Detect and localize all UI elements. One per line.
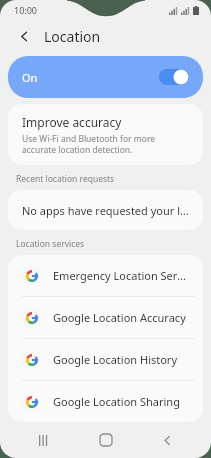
button[interactable]: Home: [88, 422, 124, 458]
staticText: Recent location requests: [16, 173, 115, 185]
button[interactable]: Emergency Location Service: [8, 255, 203, 296]
button[interactable]: Improve accuracy: [8, 104, 203, 165]
staticText: Emergency Location Service: [53, 268, 191, 283]
staticText: Improve accuracy: [22, 114, 122, 130]
button[interactable]: Back: [12, 24, 36, 48]
button[interactable]: Back: [149, 422, 185, 458]
button[interactable]: No apps have requested your locatio..: [8, 190, 203, 230]
staticText: Google Location Sharing: [53, 394, 180, 409]
staticText: Google Location Accuracy: [53, 310, 186, 325]
button[interactable]: Google Location Accuracy: [8, 297, 203, 338]
staticText: Location: [44, 27, 101, 46]
button[interactable]: On: [8, 56, 203, 98]
staticText: Location services: [16, 238, 85, 250]
button[interactable]: Google Location Sharing: [8, 381, 203, 422]
staticText: Use Wi-Fi and Bluetooth for more accurat…: [22, 133, 189, 155]
staticText: 10:00: [14, 4, 38, 16]
staticText: On: [22, 70, 38, 85]
button[interactable]: Recents: [26, 422, 62, 458]
staticText: No apps have requested your locatio..: [22, 203, 189, 218]
button[interactable]: Google Location History: [8, 339, 203, 380]
staticText: Google Location History: [53, 352, 178, 367]
